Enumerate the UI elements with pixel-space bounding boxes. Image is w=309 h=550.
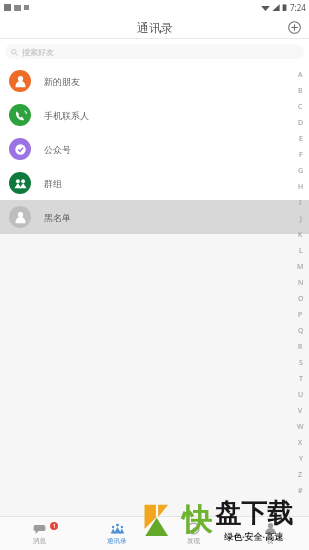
staticText: E: [299, 134, 303, 144]
staticText: 通讯录: [107, 537, 127, 545]
staticText: B: [298, 86, 303, 96]
button[interactable]: Alphabet index: [292, 67, 309, 499]
staticText: J: [300, 214, 302, 224]
staticText: 消息: [33, 537, 46, 545]
staticText: 公众号: [44, 144, 71, 155]
staticText: #: [298, 486, 303, 496]
staticText: 1: [53, 523, 56, 530]
staticText: K: [298, 230, 303, 240]
staticText: 发现: [187, 537, 200, 545]
staticText: V: [298, 406, 303, 416]
button[interactable]: 我: [232, 517, 309, 550]
button[interactable]: Add contact: [284, 17, 304, 37]
staticText: 7:24: [290, 2, 306, 13]
button[interactable]: 通讯录: [78, 517, 155, 550]
button[interactable]: 群组: [0, 166, 309, 200]
staticText: D: [298, 118, 304, 128]
staticText: I: [299, 198, 302, 208]
staticText: Q: [298, 326, 304, 336]
staticText: F: [299, 150, 303, 160]
button[interactable]: 公众号: [0, 132, 309, 166]
button[interactable]: 1: [0, 517, 78, 550]
staticText: N: [298, 278, 304, 288]
button[interactable]: 发现: [155, 517, 232, 550]
staticText: U: [298, 390, 304, 400]
staticText: 手机联系人: [44, 110, 89, 121]
staticText: 搜索好友: [22, 47, 54, 57]
staticText: A: [298, 70, 303, 80]
staticText: L: [299, 246, 303, 256]
staticText: 盘下载: [215, 497, 293, 530]
staticText: S: [299, 358, 303, 368]
staticText: G: [298, 166, 304, 176]
staticText: R: [298, 342, 303, 352]
staticText: 通讯录: [137, 20, 173, 35]
staticText: O: [298, 294, 304, 304]
staticText: Y: [299, 454, 303, 464]
staticText: 快: [182, 501, 212, 539]
staticText: 我: [267, 537, 274, 545]
staticText: C: [298, 102, 303, 112]
button[interactable]: 新的朋友: [0, 64, 309, 98]
staticText: X: [298, 438, 303, 448]
staticText: 黑名单: [44, 212, 71, 223]
staticText: P: [298, 310, 303, 320]
staticText: 群组: [44, 178, 62, 189]
staticText: M: [297, 262, 304, 272]
staticText: H: [298, 182, 304, 192]
staticText: Z: [298, 470, 303, 480]
button[interactable]: 手机联系人: [0, 98, 309, 132]
button[interactable]: 黑名单: [0, 200, 309, 234]
staticText: W: [297, 422, 304, 432]
staticText: T: [299, 374, 303, 384]
button[interactable]: 搜索好友: [5, 44, 304, 59]
staticText: 绿色·安全·高速: [224, 530, 284, 542]
staticText: 新的朋友: [44, 76, 80, 87]
